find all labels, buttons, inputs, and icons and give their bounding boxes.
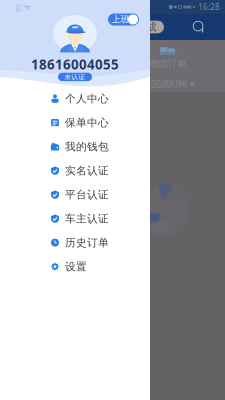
staticText: 上班 (111, 14, 129, 25)
button[interactable]: 未认证 (58, 73, 92, 81)
button[interactable]: 设置 (0, 255, 150, 279)
staticText: 我的钱包 (65, 140, 109, 153)
button[interactable]: 我的钱包 (0, 135, 150, 159)
staticText: 保单中心 (65, 116, 109, 129)
button[interactable]: 个人中心 (0, 87, 150, 111)
staticText: 设置 (65, 260, 87, 273)
button[interactable]: 实名认证 (0, 159, 150, 183)
button[interactable]: 车主认证 (0, 207, 150, 231)
button[interactable]: 保单中心 (0, 111, 150, 135)
button[interactable]: 平台认证 (0, 183, 150, 207)
staticText: 完成时间 ▾ (151, 78, 195, 90)
staticText: 个人中心 (65, 92, 109, 105)
staticText: 成 (146, 20, 157, 33)
staticText: 车主认证 (65, 212, 109, 225)
staticText: 物流订单 (150, 58, 186, 69)
staticText: 16:28 (198, 2, 220, 12)
button[interactable]: 历史订单 (0, 231, 150, 255)
staticText: 未认证 (64, 73, 85, 81)
staticText: 实名认证 (65, 164, 109, 177)
button[interactable]: 上班 (108, 13, 139, 25)
staticText: 平台认证 (65, 188, 109, 201)
staticText: 18616004055 (31, 55, 119, 73)
staticText: 历史订单 (65, 236, 109, 249)
